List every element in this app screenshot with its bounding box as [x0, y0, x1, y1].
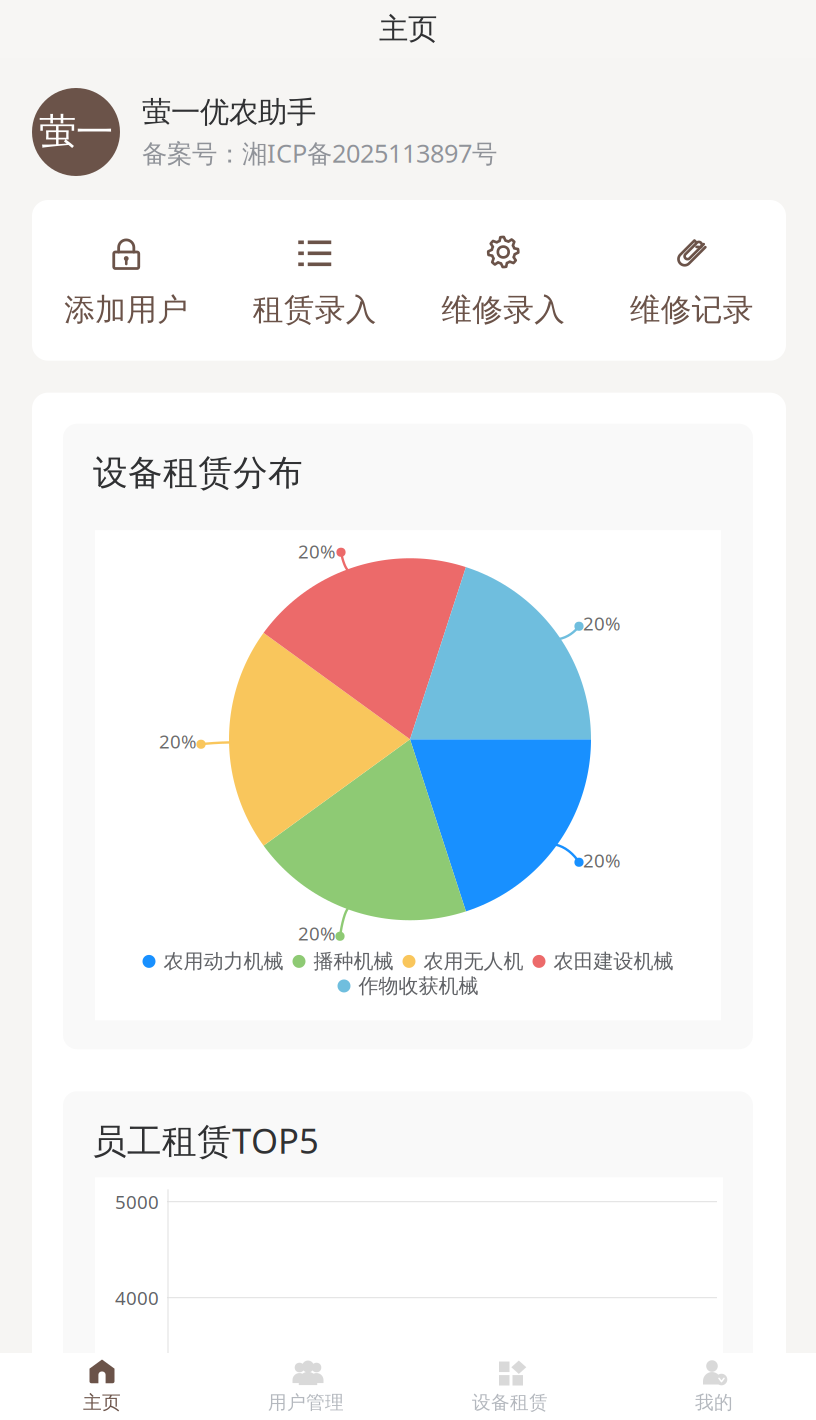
- staticText: 主页: [379, 11, 437, 47]
- staticText: 备案号：湘ICP备2025113897号: [142, 136, 497, 170]
- button[interactable]: 维修录入: [409, 231, 597, 329]
- staticText: 租赁录入: [253, 291, 377, 329]
- staticText: 员工租赁TOP5: [92, 1117, 319, 1163]
- button[interactable]: 设备租赁: [408, 1353, 612, 1420]
- staticText: 播种机械: [313, 949, 393, 974]
- staticText: 维修录入: [441, 291, 565, 329]
- staticText: 农田建设机械: [553, 949, 673, 974]
- button[interactable]: 用户管理: [204, 1353, 408, 1420]
- button[interactable]: 主页: [0, 1353, 204, 1420]
- staticText: 20%: [159, 729, 197, 754]
- button[interactable]: 添加用户: [32, 231, 220, 329]
- staticText: 作物收获机械: [358, 974, 478, 998]
- staticText: 3000: [115, 1381, 159, 1406]
- staticText: 用户管理: [268, 1391, 344, 1414]
- staticText: 萤一: [39, 109, 113, 155]
- staticText: 设备租赁分布: [93, 452, 303, 494]
- staticText: 5000: [115, 1189, 159, 1214]
- staticText: 我的: [695, 1391, 733, 1414]
- staticText: 维修记录: [630, 291, 754, 329]
- staticText: 农用动力机械: [163, 949, 283, 974]
- button[interactable]: 租赁录入: [220, 231, 409, 329]
- staticText: 20%: [583, 848, 621, 873]
- staticText: 萤一优农助手: [142, 94, 316, 130]
- staticText: 主页: [83, 1391, 121, 1414]
- staticText: 设备租赁: [472, 1391, 548, 1414]
- button[interactable]: 我的: [612, 1353, 816, 1420]
- staticText: 20%: [583, 611, 621, 636]
- staticText: 添加用户: [64, 291, 188, 329]
- staticText: 20%: [298, 921, 336, 946]
- staticText: 4000: [115, 1285, 159, 1310]
- staticText: 农用无人机: [423, 949, 523, 974]
- staticText: 20%: [298, 539, 336, 564]
- button[interactable]: 维修记录: [597, 231, 786, 329]
